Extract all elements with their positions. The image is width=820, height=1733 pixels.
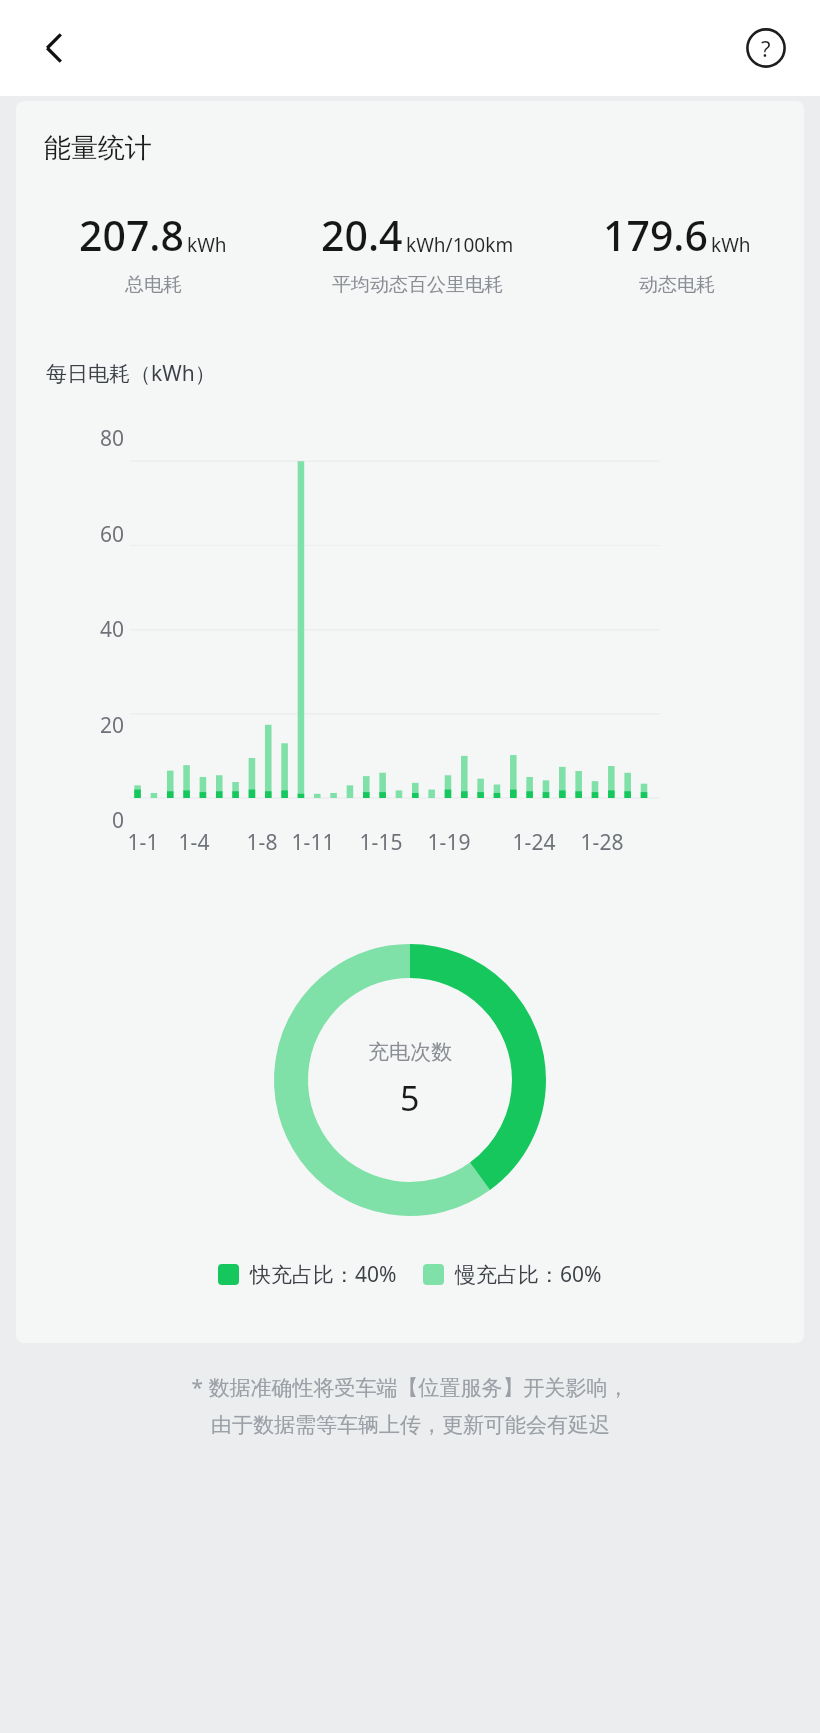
staticText: 由于数据需等车辆上传，更新可能会有延迟 bbox=[211, 1412, 610, 1438]
staticText: 20 bbox=[16, 711, 124, 740]
staticText: 80 bbox=[16, 424, 124, 453]
staticText: 1-15 bbox=[347, 828, 415, 857]
button[interactable]: 慢充占比：60% bbox=[423, 1260, 602, 1289]
staticText: 179.6 bbox=[603, 207, 708, 263]
staticText: kWh bbox=[187, 232, 227, 258]
button[interactable]: Help bbox=[738, 20, 794, 76]
staticText: 1-8 bbox=[228, 828, 296, 857]
staticText: 快充占比：40% bbox=[250, 1260, 397, 1289]
staticText: 5 bbox=[400, 1075, 420, 1121]
staticText: 每日电耗（kWh） bbox=[46, 359, 216, 388]
staticText: 1-19 bbox=[415, 828, 483, 857]
staticText: 动态电耗 bbox=[639, 273, 715, 297]
staticText: 0 bbox=[16, 806, 124, 835]
button[interactable]: Back bbox=[26, 20, 82, 76]
staticText: 20.4 bbox=[321, 207, 403, 263]
staticText: 1-4 bbox=[160, 828, 228, 857]
staticText: kWh/100km bbox=[406, 232, 514, 258]
staticText: ? bbox=[761, 33, 771, 63]
staticText: 40 bbox=[16, 615, 124, 644]
staticText: 平均动态百公里电耗 bbox=[332, 273, 503, 297]
staticText: 60 bbox=[16, 520, 124, 549]
staticText: 充电次数 bbox=[368, 1039, 452, 1065]
staticText: 慢充占比：60% bbox=[455, 1260, 602, 1289]
staticText: kWh bbox=[711, 232, 751, 258]
staticText: 207.8 bbox=[79, 207, 184, 263]
button[interactable]: 快充占比：40% bbox=[218, 1260, 397, 1289]
staticText: 1-1 bbox=[109, 828, 177, 857]
staticText: 1-11 bbox=[279, 828, 347, 857]
staticText: 能量统计 bbox=[44, 131, 152, 165]
staticText: 总电耗 bbox=[125, 273, 182, 297]
staticText: * 数据准确性将受车端【位置服务】开关影响， bbox=[191, 1373, 629, 1402]
staticText: 1-24 bbox=[500, 828, 568, 857]
staticText: 1-28 bbox=[568, 828, 636, 857]
